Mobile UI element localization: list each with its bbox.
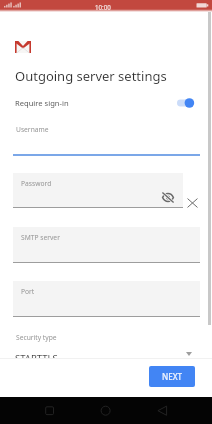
staticText: STARTTLS <box>15 352 58 365</box>
button[interactable]: Username <box>13 122 200 156</box>
staticText: Security type <box>16 333 57 342</box>
button[interactable]: Show password <box>162 192 174 203</box>
staticText: Port <box>21 287 35 296</box>
staticText: Require sign-in <box>15 98 69 108</box>
button[interactable]: Password <box>13 173 183 208</box>
staticText: Username <box>16 125 49 134</box>
button[interactable]: Clear <box>187 198 198 208</box>
button[interactable]: Require sign-in <box>0 94 212 112</box>
staticText: NEXT <box>162 371 183 382</box>
button[interactable]: Recent apps <box>22 397 77 424</box>
button[interactable]: Security type <box>13 328 200 360</box>
button[interactable]: NEXT <box>149 366 195 387</box>
button[interactable]: Require sign-in toggle <box>177 96 199 110</box>
button[interactable]: SMTP server <box>13 227 200 263</box>
staticText: Outgoing server settings <box>15 67 167 85</box>
staticText: Password <box>21 179 52 188</box>
staticText: 10:00 <box>95 3 111 11</box>
staticText: SMTP server <box>21 233 60 242</box>
button[interactable]: Port <box>13 281 200 317</box>
